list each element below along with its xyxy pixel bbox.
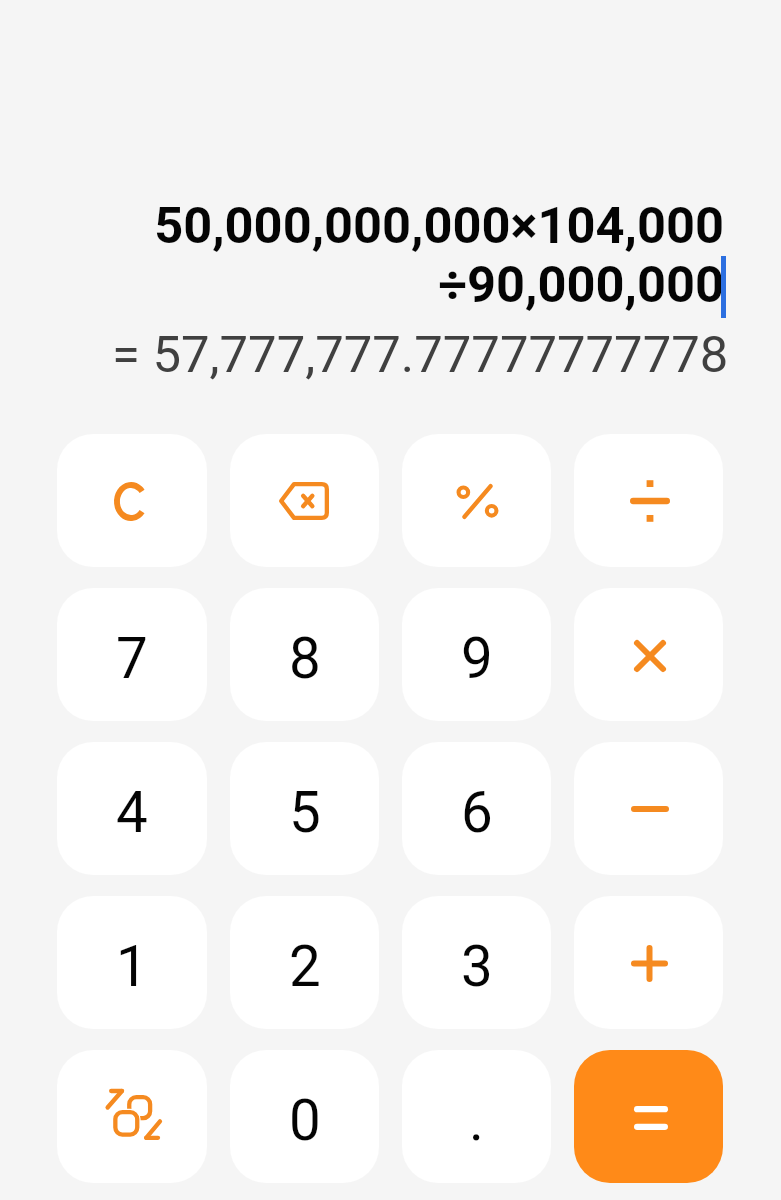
staticText: 7 <box>116 626 148 692</box>
staticText: 6 <box>461 780 493 846</box>
button[interactable]: Divide <box>574 434 723 567</box>
button[interactable]: 4 <box>57 742 207 875</box>
button[interactable]: 9 <box>402 588 551 721</box>
button[interactable]: Percent <box>402 434 551 567</box>
button[interactable]: 8 <box>230 588 379 721</box>
button[interactable]: 1 <box>57 896 207 1029</box>
button[interactable]: Minus <box>574 742 723 875</box>
staticText: 8 <box>289 626 321 692</box>
button[interactable]: 2 <box>230 896 379 1029</box>
button[interactable]: 3 <box>402 896 551 1029</box>
button[interactable]: 5 <box>230 742 379 875</box>
button[interactable]: 0 <box>230 1050 379 1183</box>
staticText: 5 <box>289 780 321 846</box>
button[interactable]: Unit converter <box>57 1050 207 1183</box>
staticText: 4 <box>116 780 148 846</box>
button[interactable]: Multiply <box>574 588 723 721</box>
staticText: 1 <box>116 934 148 1000</box>
staticText: 3 <box>461 934 493 1000</box>
staticText: 0 <box>289 1088 321 1154</box>
staticText: . <box>469 1088 484 1154</box>
button[interactable]: Equals <box>574 1050 723 1183</box>
button[interactable]: 6 <box>402 742 551 875</box>
button[interactable]: Clear <box>57 434 207 567</box>
button[interactable]: Plus <box>574 896 723 1029</box>
button[interactable]: 7 <box>57 588 207 721</box>
staticText: 50,000,000,000×104,000 ÷90,000,000 <box>154 196 724 314</box>
button[interactable]: . <box>402 1050 551 1183</box>
staticText: = 57,777,777.77777777778 <box>112 325 729 385</box>
staticText: 2 <box>289 934 321 1000</box>
staticText: 9 <box>461 626 493 692</box>
button[interactable]: Backspace <box>230 434 379 567</box>
